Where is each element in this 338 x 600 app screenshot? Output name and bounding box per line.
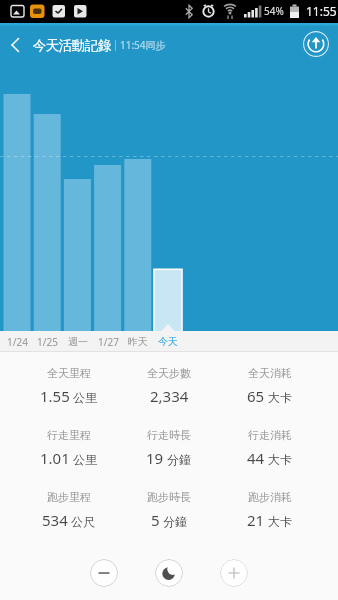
staticText: 1/25 bbox=[37, 335, 58, 349]
staticText: 534 bbox=[42, 510, 68, 530]
staticText: 全天步數 bbox=[147, 366, 191, 380]
staticText: 大卡 bbox=[268, 452, 292, 467]
staticText: 跑步消耗 bbox=[248, 490, 292, 504]
staticText: 公尺 bbox=[71, 514, 95, 529]
staticText: 公里 bbox=[73, 452, 97, 467]
button[interactable]: 今天 bbox=[150, 331, 186, 352]
staticText: 1.01 bbox=[40, 448, 70, 468]
staticText: 11:54同步 bbox=[120, 38, 166, 52]
staticText: 行走時長 bbox=[147, 428, 191, 442]
staticText: 44 bbox=[247, 448, 265, 468]
staticText: 1.55 bbox=[40, 386, 70, 406]
staticText: 54% bbox=[264, 4, 284, 18]
staticText: 週一 bbox=[68, 335, 88, 348]
staticText: 公里 bbox=[73, 390, 97, 405]
staticText: 大卡 bbox=[268, 390, 292, 405]
button[interactable]: 1/27 bbox=[90, 331, 126, 352]
staticText: 跑步時長 bbox=[147, 490, 191, 504]
staticText: 65 bbox=[247, 386, 265, 406]
button[interactable]: 1/25 bbox=[29, 331, 65, 352]
staticText: 跑步里程 bbox=[47, 490, 91, 504]
staticText: 21 bbox=[247, 510, 265, 530]
button[interactable] bbox=[0, 23, 30, 67]
button[interactable]: 週一 bbox=[60, 331, 96, 352]
button[interactable] bbox=[220, 559, 248, 587]
staticText: 1/24 bbox=[7, 335, 28, 349]
staticText: 全天消耗 bbox=[248, 366, 292, 380]
staticText: 今天活動記錄 bbox=[33, 37, 111, 54]
staticText: 5 bbox=[151, 510, 160, 530]
staticText: 分鐘 bbox=[163, 514, 187, 529]
button[interactable]: 1/24 bbox=[0, 331, 35, 352]
staticText: 11:55 bbox=[306, 3, 337, 19]
button[interactable] bbox=[294, 23, 338, 67]
staticText: 2,334 bbox=[150, 386, 189, 406]
staticText: 行走里程 bbox=[47, 428, 91, 442]
staticText: 大卡 bbox=[268, 514, 292, 529]
button[interactable]: 昨天 bbox=[120, 331, 156, 352]
button[interactable] bbox=[155, 559, 183, 587]
staticText: 分鐘 bbox=[167, 452, 191, 467]
staticText: 今天 bbox=[158, 335, 178, 348]
button[interactable] bbox=[90, 559, 118, 587]
staticText: 全天里程 bbox=[47, 366, 91, 380]
staticText: 昨天 bbox=[128, 335, 148, 348]
staticText: 行走消耗 bbox=[248, 428, 292, 442]
staticText: 1/27 bbox=[98, 335, 119, 349]
staticText: 19 bbox=[146, 448, 164, 468]
